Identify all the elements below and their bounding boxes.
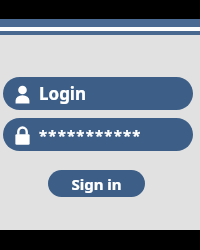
button[interactable]: Sign in (48, 170, 145, 197)
staticText: Login (39, 82, 87, 105)
staticText: *********** (39, 125, 142, 145)
staticText: Sign in (71, 174, 122, 194)
button[interactable]: Password field (3, 118, 193, 151)
button[interactable]: Login field (3, 77, 193, 110)
